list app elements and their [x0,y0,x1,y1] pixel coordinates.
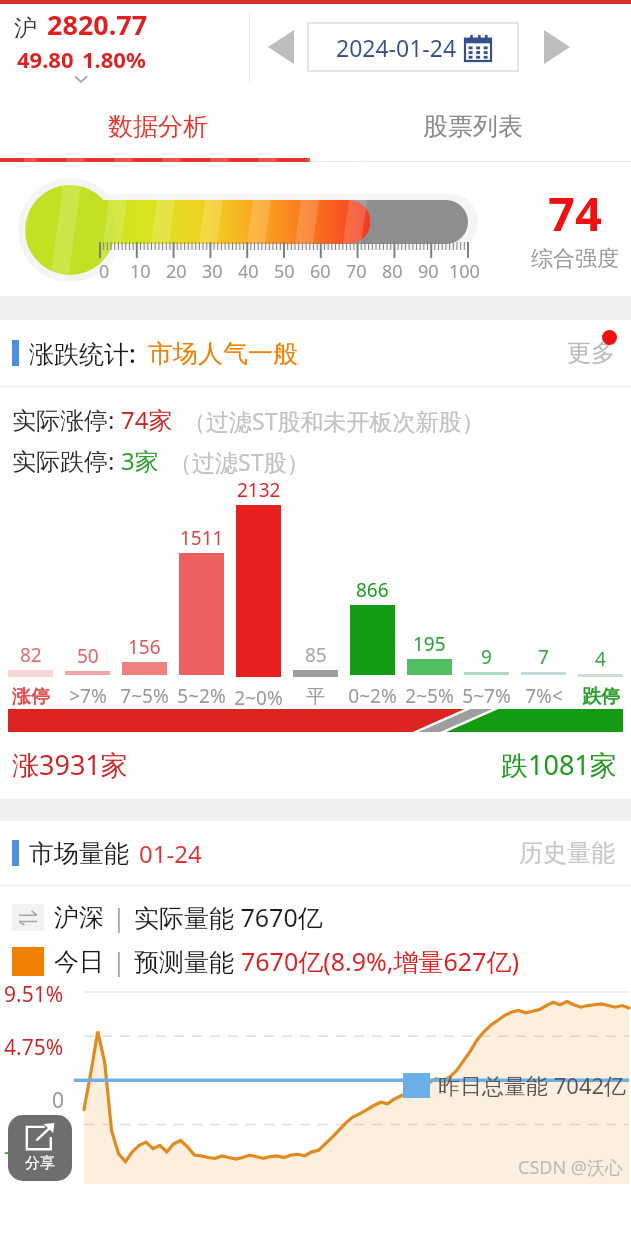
staticText: 预测量能 [134,944,241,978]
staticText: 1511 [180,525,224,551]
staticText: 今日 [54,946,104,977]
staticText: 3家 [121,444,159,477]
button[interactable]: Previous day [254,22,308,72]
staticText: 70 [346,259,367,284]
staticText: 涨3931家 [12,746,128,783]
button[interactable]: 7 [515,644,572,709]
staticText: 7 [538,644,549,670]
staticText: 9 [481,644,492,670]
staticText: 49.80 [17,44,74,74]
staticText: 综合强度 [531,245,619,273]
staticText: 市场量能 [29,838,129,869]
staticText: 2024-01-24 [336,32,457,63]
staticText: 50 [274,259,295,284]
staticText: 实际跌停: [12,444,121,477]
staticText: 2~5% [405,683,454,709]
staticText: 分享 [25,1154,55,1173]
staticText: 5~7% [462,683,511,709]
staticText: 20 [166,259,187,284]
staticText: 1.80% [82,44,146,74]
staticText: 4 [595,646,606,672]
staticText: >7% [69,683,107,709]
staticText: 5~2% [177,683,226,709]
staticText: 更多 [567,338,615,368]
button[interactable]: 2024-01-24 [308,23,518,71]
button[interactable]: 9 [458,644,515,709]
staticText: 40 [238,259,259,284]
staticText: 85 [305,642,327,668]
staticText: 涨停 [12,685,50,709]
staticText: 实际涨停: [12,403,121,436]
staticText: 涨跌统计: [29,336,136,370]
staticText: 平 [306,685,325,709]
staticText: 0 [99,259,110,284]
staticText: 7~5% [120,683,169,709]
staticText: | [112,944,126,978]
staticText: 股票列表 [423,111,523,142]
button[interactable]: 866 [344,577,401,709]
staticText: 沪 [14,14,37,43]
staticText: 90 [418,259,439,284]
staticText: | [112,900,126,934]
staticText: -4.75% [4,1137,70,1166]
staticText: CSDN @沃心 [518,1155,623,1180]
staticText: 4.75% [4,1033,64,1062]
staticText: 50 [77,643,99,669]
staticText: 2132 [237,477,281,503]
button[interactable]: 更多 [567,338,615,368]
staticText: （过滤ST股） [169,446,310,477]
staticText: 沪深 [54,902,104,933]
staticText: 80 [382,259,403,284]
button[interactable]: 1511 [173,525,230,709]
button[interactable]: 股票列表 [315,90,631,162]
button[interactable]: 50 [59,643,116,709]
staticText: 实际量能 7670亿 [134,900,323,934]
button[interactable]: 4 [572,646,629,709]
staticText: 74家 [121,403,173,436]
staticText: 10 [130,259,151,284]
staticText: （过滤ST股和未开板次新股） [183,405,485,436]
button[interactable]: 2132 [230,477,287,709]
staticText: 60 [310,259,331,284]
staticText: 昨日总量能 7042亿 [438,1070,627,1100]
staticText: 7%< [525,683,563,709]
button[interactable]: 历史量能 [519,838,615,868]
staticText: 2~0% [234,685,283,709]
staticText: 01-24 [139,837,202,870]
staticText: 0 [52,1086,65,1115]
button[interactable]: 82 [2,642,59,709]
button[interactable]: 沪 [14,6,148,85]
button[interactable]: 195 [401,631,458,709]
staticText: 195 [413,631,446,657]
staticText: 74 [548,181,602,245]
staticText: 数据分析 [108,111,208,142]
staticText: 156 [128,634,161,660]
staticText: 7670亿(8.9%,增量627亿) [241,944,519,978]
button[interactable]: 156 [116,634,173,709]
button[interactable]: Next day [530,22,584,72]
staticText: 跌1081家 [501,746,617,783]
staticText: 866 [356,577,389,603]
button[interactable]: 85 [287,642,344,709]
staticText: 历史量能 [519,838,615,868]
button[interactable]: 数据分析 [0,90,315,162]
staticText: 100 [449,259,480,284]
staticText: 30 [202,259,223,284]
staticText: 跌停 [582,685,620,709]
staticText: 9.51% [4,980,64,1009]
staticText: 市场人气一般 [148,338,298,369]
staticText: 2820.77 [47,6,148,43]
button[interactable]: Share [8,1115,72,1181]
staticText: 82 [20,642,42,668]
staticText: 0~2% [348,683,397,709]
